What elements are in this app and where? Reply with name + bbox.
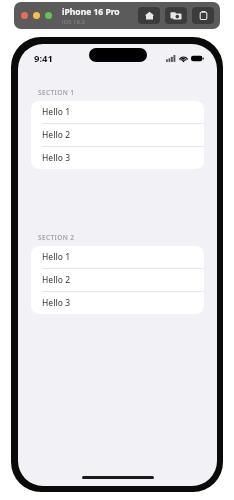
- staticText: iOS 18.2: [62, 18, 85, 26]
- staticText: Hello 1: [42, 251, 71, 263]
- staticText: Hello 1: [42, 106, 71, 118]
- button[interactable]: Screenshot: [165, 7, 187, 24]
- staticText: 9:41: [34, 52, 53, 65]
- staticText: Hello 2: [42, 129, 71, 141]
- staticText: Hello 2: [42, 274, 71, 286]
- button[interactable]: Home: [138, 7, 160, 24]
- button[interactable]: Hello 1: [31, 101, 204, 124]
- button[interactable]: Record screen: [192, 7, 214, 24]
- button[interactable]: Hello 2: [31, 124, 204, 147]
- staticText: iPhone 16 Pro: [62, 6, 120, 18]
- staticText: SECTION 1: [38, 88, 75, 97]
- button[interactable]: Hello 3: [31, 147, 204, 169]
- staticText: SECTION 2: [38, 233, 75, 242]
- button[interactable]: Hello 3: [31, 292, 204, 314]
- button[interactable]: Hello 2: [31, 269, 204, 292]
- button[interactable]: Hello 1: [31, 246, 204, 269]
- staticText: Hello 3: [42, 297, 71, 309]
- staticText: Hello 3: [42, 152, 71, 164]
